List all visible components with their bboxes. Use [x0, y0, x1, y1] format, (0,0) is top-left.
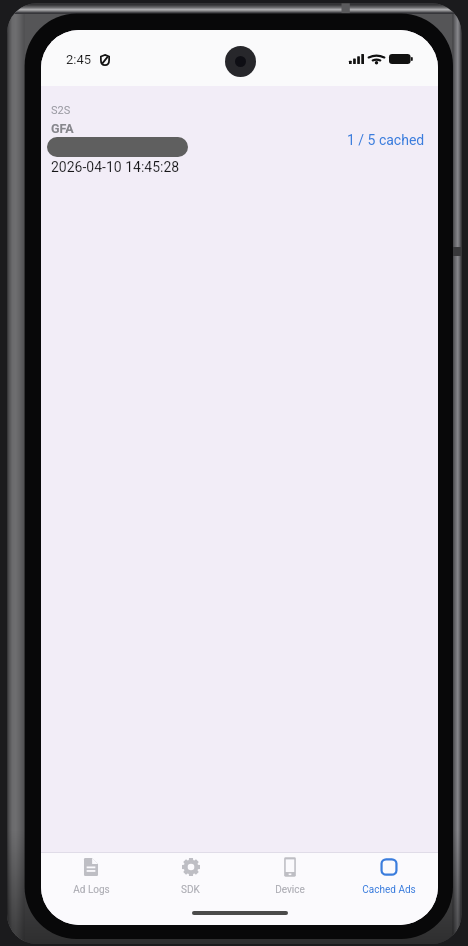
staticText: 1 / 5 cached [347, 132, 425, 148]
staticText: SDK [181, 884, 200, 896]
staticText: 2026-04-10 14:45:28 [51, 159, 180, 175]
staticText: Device [275, 884, 305, 896]
staticText: 2:45 [66, 52, 92, 67]
button[interactable]: SDK [141, 853, 240, 896]
staticText: Cached Ads [362, 884, 416, 896]
staticText: S2S [51, 104, 71, 117]
button[interactable]: Cached Ads [339, 853, 438, 896]
staticText: GFA [51, 121, 74, 136]
button[interactable]: S2S [41, 86, 438, 187]
button[interactable]: Device [240, 853, 339, 896]
button[interactable]: Ad Logs [41, 853, 141, 896]
staticText: Ad Logs [73, 884, 110, 896]
